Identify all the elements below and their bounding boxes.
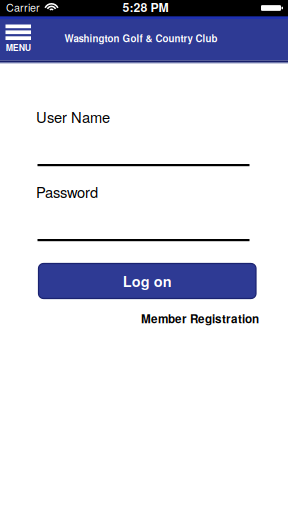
button[interactable]: Member Registration — [141, 310, 259, 327]
staticText: Carrier — [6, 0, 40, 15]
button[interactable]: Log on — [38, 263, 256, 298]
staticText: Member Registration — [141, 310, 259, 327]
staticText: Washington Golf & Country Club — [64, 31, 217, 45]
button[interactable]: Menu — [5, 24, 31, 54]
staticText: Log on — [123, 271, 172, 291]
staticText: MENU — [6, 41, 31, 54]
staticText: Password — [36, 181, 98, 202]
staticText: 5:28 PM — [122, 0, 168, 16]
staticText: User Name — [36, 106, 110, 127]
